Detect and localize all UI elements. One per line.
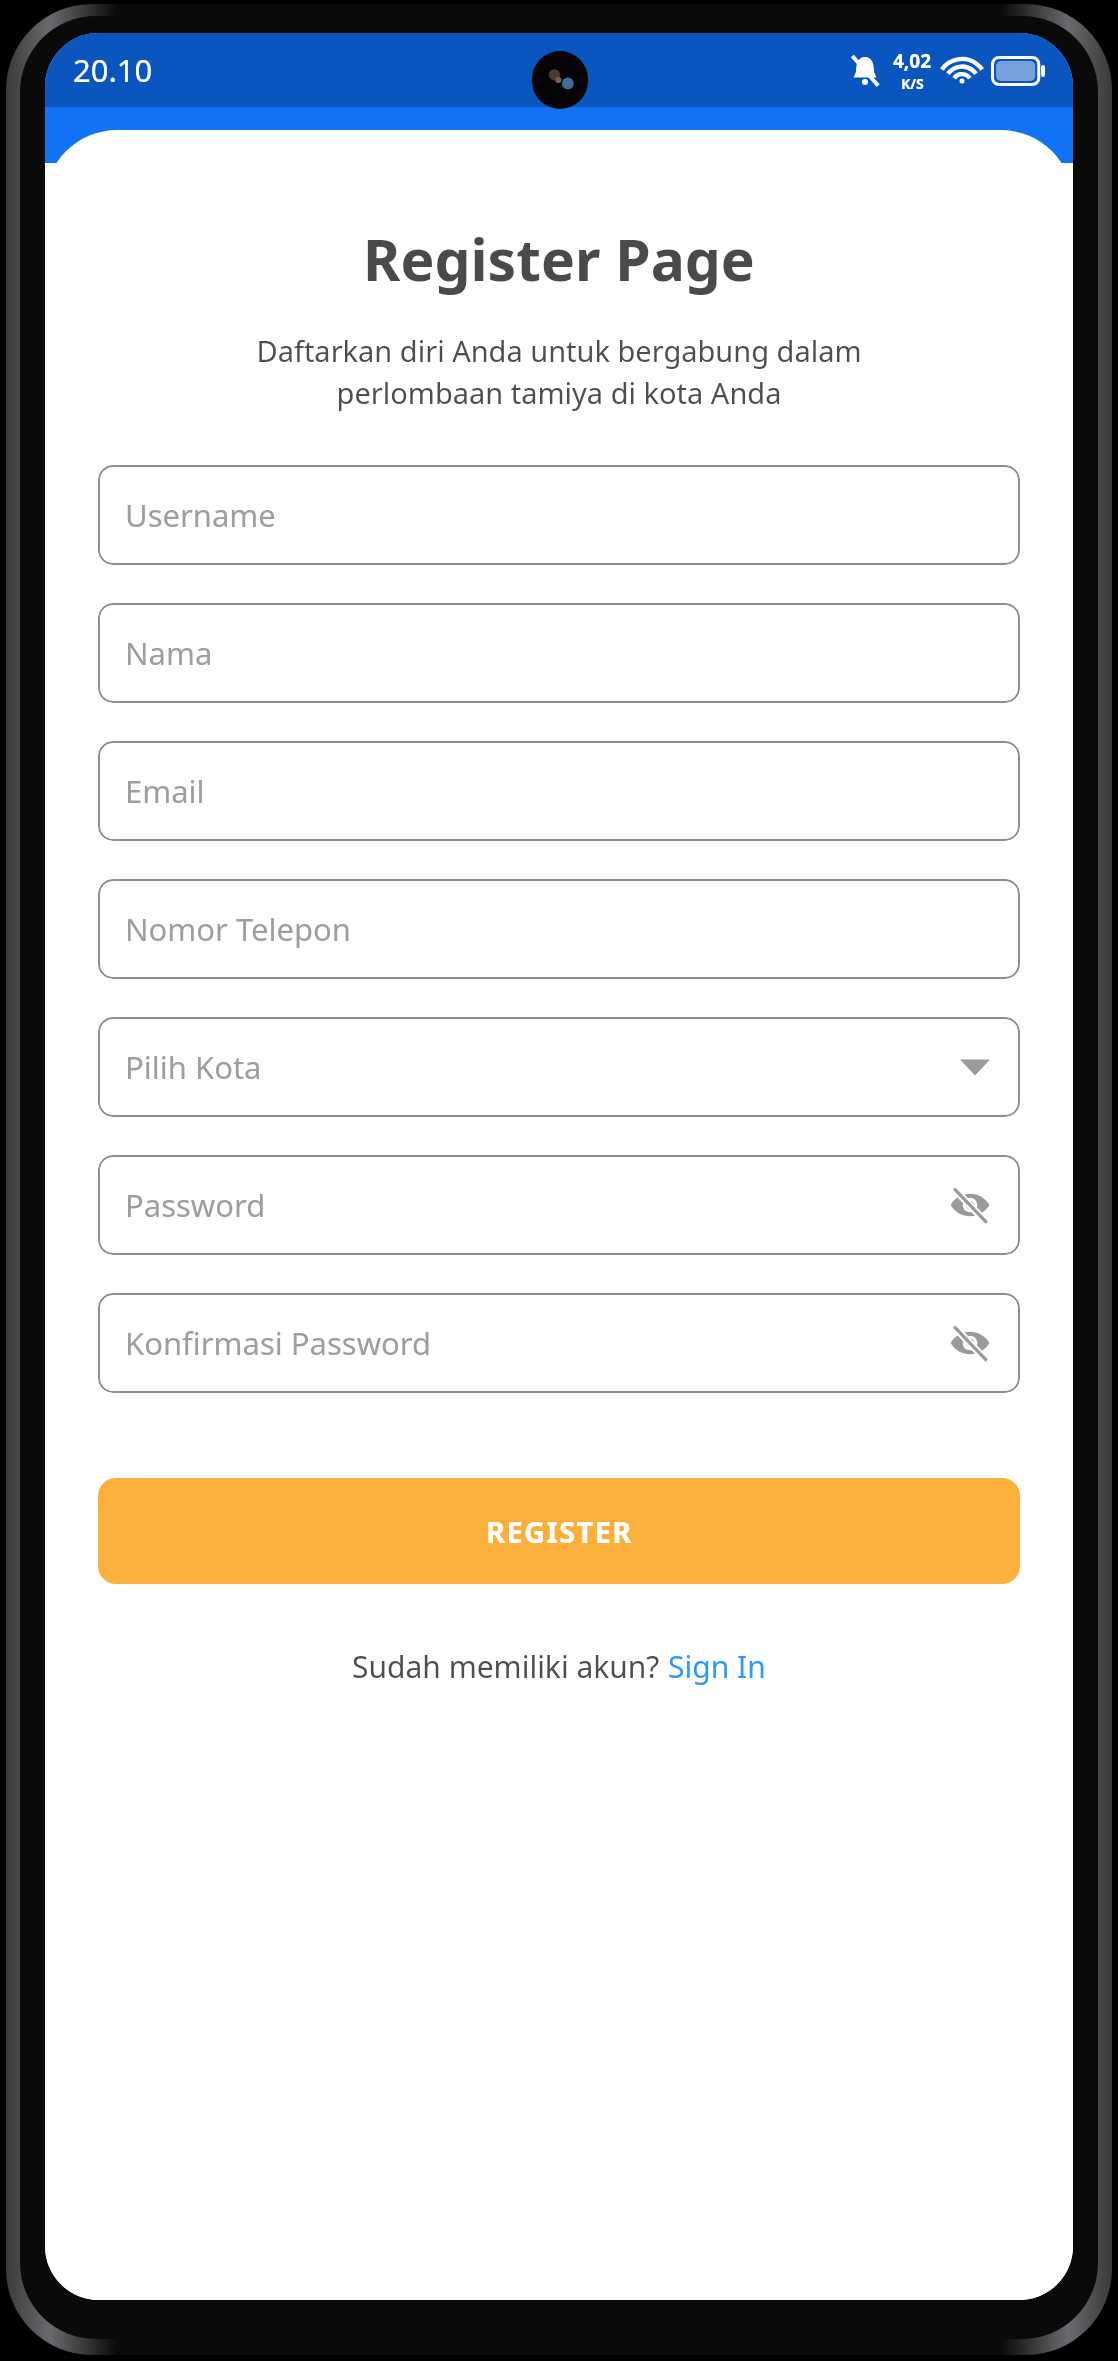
button[interactable]: Konfirmasi Password	[98, 1293, 1020, 1393]
staticText: Username	[125, 494, 276, 536]
button[interactable]: Username	[98, 465, 1020, 565]
staticText: Nomor Telepon	[125, 908, 351, 950]
staticText: Nama	[125, 632, 213, 674]
button[interactable]: Email	[98, 741, 1020, 841]
staticText: 20.10	[73, 49, 153, 91]
button[interactable]: Nama	[98, 603, 1020, 703]
staticText: REGISTER	[486, 1512, 633, 1551]
staticText: Konfirmasi Password	[125, 1322, 432, 1364]
staticText: Email	[125, 770, 205, 812]
button[interactable]: Password	[98, 1155, 1020, 1255]
button[interactable]: Pilih Kota	[98, 1017, 1020, 1117]
staticText: 4,02	[893, 48, 932, 74]
staticText: Daftarkan diri Anda untuk bergabung dala…	[256, 331, 862, 412]
staticText: Register Page	[363, 220, 755, 298]
staticText: Sudah memiliki akun?	[352, 1646, 668, 1687]
other: Open city dropdown	[960, 1057, 990, 1077]
staticText: Sign In	[668, 1646, 766, 1687]
button[interactable]: Sign In	[668, 1646, 766, 1687]
staticText: K/S	[901, 74, 924, 93]
button[interactable]: Toggle password visibility	[944, 1317, 996, 1369]
staticText: Pilih Kota	[125, 1046, 262, 1088]
button[interactable]: REGISTER	[98, 1478, 1020, 1584]
button[interactable]: Nomor Telepon	[98, 879, 1020, 979]
button[interactable]: Toggle password visibility	[944, 1179, 996, 1231]
staticText: Password	[125, 1184, 266, 1226]
